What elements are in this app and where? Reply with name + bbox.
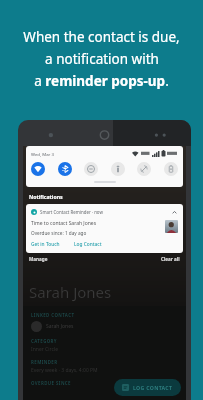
button[interactable]: LOG CONTACT xyxy=(114,379,181,396)
button[interactable]: Clear all xyxy=(161,256,180,262)
staticText: Time to contact Sarah Jones xyxy=(31,220,97,227)
staticText: Manage xyxy=(29,256,48,262)
staticText: a notification with xyxy=(45,50,159,68)
button[interactable]: Get in Touch xyxy=(31,241,62,248)
staticText: Smart Contact Reminder · now xyxy=(40,209,103,215)
button[interactable]: Quick setting toggle xyxy=(164,162,178,176)
button[interactable]: Manage xyxy=(29,256,48,262)
staticText: Overdue since: 1 day ago xyxy=(31,230,87,236)
staticText: REMINDER xyxy=(31,359,58,365)
button[interactable]: Quick setting toggle xyxy=(58,162,72,176)
staticText: Wed, Mar 3 xyxy=(31,151,54,157)
staticText: Get in Touch xyxy=(31,241,60,248)
staticText: Log Contact xyxy=(74,241,102,248)
staticText: OVERDUE SINCE xyxy=(31,380,71,386)
staticText: a reminder pops-up. xyxy=(34,72,169,90)
button[interactable]: Quick setting toggle xyxy=(111,162,125,176)
staticText: LOG CONTACT xyxy=(133,384,173,391)
button[interactable]: Log Contact xyxy=(74,241,102,248)
button[interactable]: Quick setting toggle xyxy=(84,162,98,176)
button[interactable]: Collapse notification xyxy=(170,208,178,216)
staticText: Sarah Jones xyxy=(29,282,112,302)
button[interactable]: Smart Contact Reminder · now xyxy=(26,204,183,253)
button[interactable]: Quick setting toggle xyxy=(31,162,45,176)
staticText: Notifications xyxy=(29,193,63,200)
staticText: Sarah Jones xyxy=(46,323,74,330)
button[interactable]: Quick setting toggle xyxy=(137,162,151,176)
staticText: Every week · 3 days, 4:00 PM xyxy=(31,367,98,374)
staticText: Inner Circle xyxy=(31,346,58,353)
staticText: CATEGORY xyxy=(31,338,58,344)
staticText: Clear all xyxy=(161,256,180,262)
staticText: When the contact is due, xyxy=(23,28,180,46)
staticText: LINKED CONTACT xyxy=(31,312,75,318)
